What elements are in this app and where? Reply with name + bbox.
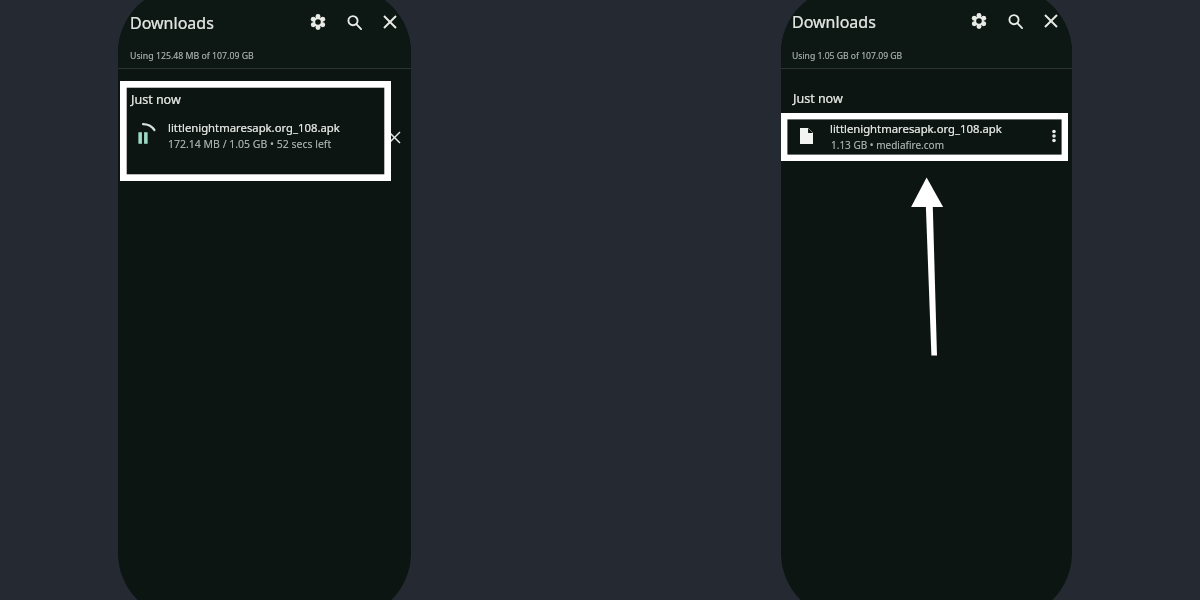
staticText: Downloads xyxy=(792,11,876,33)
staticText: littlenightmaresapk.org_108.apk xyxy=(830,121,1002,136)
button[interactable]: Close downloads xyxy=(377,9,403,35)
button[interactable]: Cancel download xyxy=(382,125,406,149)
button[interactable]: Settings xyxy=(966,8,992,34)
button[interactable] xyxy=(118,112,411,162)
button[interactable]: Search xyxy=(1002,8,1028,34)
staticText: Downloads xyxy=(130,12,214,34)
staticText: 1.13 GB • mediafire.com xyxy=(831,138,944,152)
staticText: 172.14 MB / 1.05 GB • 52 secs left xyxy=(168,137,332,151)
button[interactable]: Settings xyxy=(305,9,331,35)
staticText: Using 125.48 MB of 107.09 GB xyxy=(130,50,254,62)
staticText: Using 1.05 GB of 107.09 GB xyxy=(792,50,903,62)
button[interactable]: Close downloads xyxy=(1038,8,1064,34)
staticText: Just now xyxy=(131,91,181,108)
button[interactable] xyxy=(781,114,1072,160)
button[interactable]: Search xyxy=(341,9,367,35)
staticText: Just now xyxy=(793,90,843,107)
button[interactable]: More options xyxy=(1042,124,1066,148)
staticText: littlenightmaresapk.org_108.apk xyxy=(168,120,340,135)
